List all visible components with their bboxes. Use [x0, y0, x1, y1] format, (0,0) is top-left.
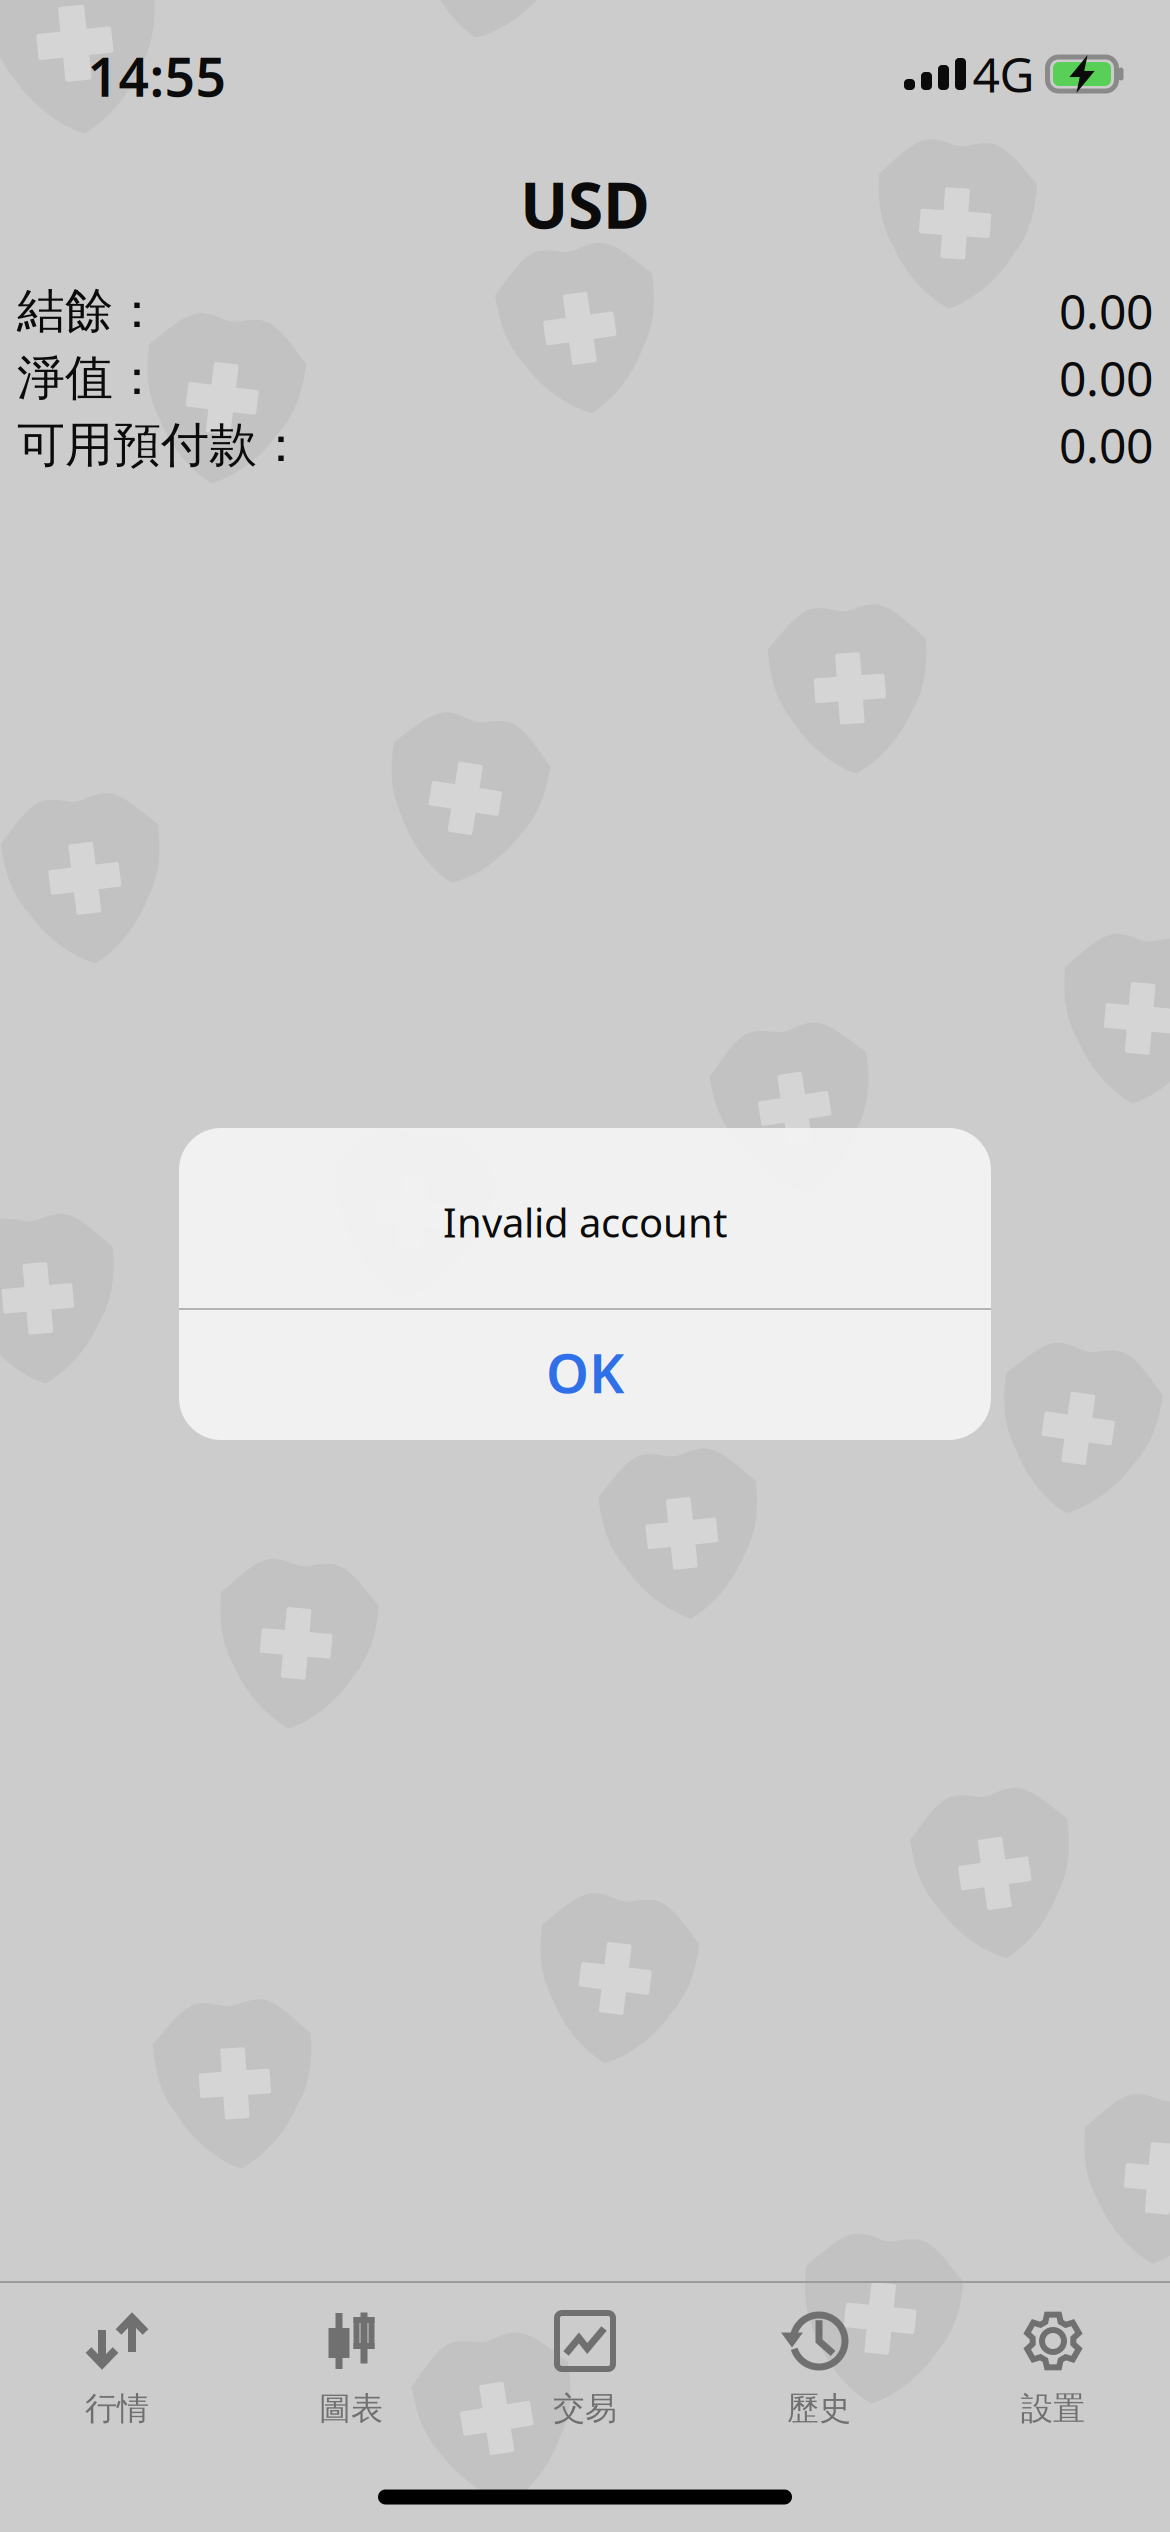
- button[interactable]: 圖表: [234, 2283, 468, 2446]
- staticText: 4G: [972, 42, 1034, 106]
- staticText: 14:55: [87, 41, 226, 111]
- staticText: 可用預付款：: [17, 415, 305, 474]
- staticText: 結餘：: [17, 281, 161, 340]
- staticText: 淨值：: [17, 348, 161, 407]
- button[interactable]: 行情: [0, 2283, 234, 2446]
- staticText: 設置: [1021, 2389, 1085, 2428]
- staticText: Invalid account: [443, 1195, 727, 1248]
- button[interactable]: 設置: [936, 2283, 1170, 2446]
- button[interactable]: 交易: [468, 2283, 702, 2446]
- staticText: 交易: [553, 2389, 617, 2428]
- staticText: 行情: [85, 2389, 149, 2428]
- button[interactable]: OK: [179, 1310, 991, 1440]
- staticText: 0.00: [1059, 346, 1153, 410]
- staticText: 歷史: [787, 2389, 851, 2428]
- staticText: 0.00: [1059, 279, 1153, 343]
- staticText: 0.00: [1059, 413, 1153, 477]
- button[interactable]: 歷史: [702, 2283, 936, 2446]
- staticText: USD: [520, 161, 650, 246]
- staticText: 圖表: [319, 2389, 383, 2428]
- staticText: OK: [546, 1336, 624, 1408]
